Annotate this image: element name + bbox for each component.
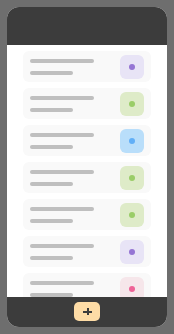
button[interactable] [23,199,151,230]
button[interactable] [23,51,151,82]
button[interactable]: Add [74,302,100,321]
button[interactable] [23,236,151,267]
button[interactable] [23,125,151,156]
button[interactable] [23,273,151,297]
button[interactable] [23,88,151,119]
button[interactable] [23,162,151,193]
